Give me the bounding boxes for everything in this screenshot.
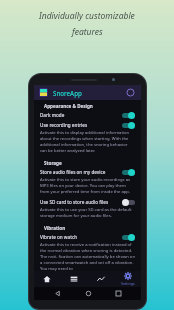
staticText: Individually customizable — [39, 10, 135, 22]
staticText: Dark mode — [40, 112, 65, 118]
staticText: Activate this to receive a notification … — [40, 242, 135, 271]
staticText: features — [72, 26, 103, 38]
staticText: Activate this to store your audio record… — [40, 177, 135, 195]
button[interactable]: Vibrate on watch — [38, 232, 137, 242]
staticText: Use SD card to store audio files — [40, 199, 109, 205]
staticText: Activate this to use your SD-card as the… — [40, 207, 135, 219]
staticText: Storage — [44, 160, 62, 166]
staticText: Use recording entries — [40, 122, 88, 128]
button[interactable]: Use recording entries — [38, 120, 137, 130]
staticText: Store audio files on my device — [40, 169, 106, 175]
button[interactable]: Use SD card to store audio files — [38, 197, 137, 207]
button[interactable]: Settings — [114, 271, 141, 287]
button[interactable]: Dark mode — [38, 110, 137, 120]
button[interactable]: Statistics — [87, 271, 114, 287]
button[interactable]: Help — [125, 87, 136, 98]
button[interactable]: Recents — [111, 287, 125, 300]
button[interactable]: Home — [34, 271, 60, 287]
staticText: Vibration — [44, 225, 66, 231]
staticText: Appearance & Design — [44, 103, 93, 109]
button[interactable]: Store audio files on my device — [38, 167, 137, 177]
staticText: Settings — [121, 281, 135, 286]
button[interactable]: Home — [81, 287, 95, 300]
button[interactable]: Recordings — [60, 271, 87, 287]
staticText: Vibrate on watch — [40, 234, 78, 240]
button[interactable]: Back — [50, 287, 64, 300]
staticText: SnoreApp — [53, 89, 82, 97]
staticText: Activate this to display additional info… — [40, 130, 135, 154]
